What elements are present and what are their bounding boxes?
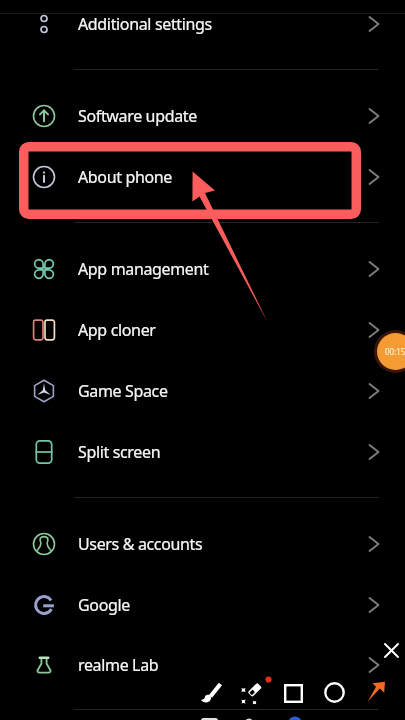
staticText: Additional settings [78,13,212,35]
button[interactable]: Google [0,575,405,635]
staticText: Software update [78,105,197,127]
button[interactable]: App management [0,239,405,299]
button[interactable]: realme Lab [0,635,405,695]
staticText: Google [78,594,130,616]
button[interactable]: Game Space [0,361,405,421]
staticText: About phone [78,166,173,188]
button[interactable]: Additional settings [0,0,405,54]
button[interactable]: App cloner [0,300,405,360]
staticText: App cloner [78,319,156,341]
button[interactable]: Arrow [366,680,388,702]
button[interactable]: Rectangle [284,684,303,703]
staticText: 00:15 [385,346,405,357]
staticText: Split screen [78,441,161,463]
button[interactable]: Software update [0,86,405,146]
button[interactable]: About phone [0,147,405,207]
button[interactable]: Ellipse [324,682,345,703]
button[interactable]: Screen recorder timer [377,333,405,370]
staticText: App management [78,258,209,280]
staticText: realme Lab [78,654,159,676]
staticText: Users & accounts [78,533,203,555]
button[interactable]: Brush [199,678,224,703]
button[interactable]: Close [383,642,400,659]
button[interactable]: Highlighter [238,674,272,708]
button[interactable]: Split screen [0,422,405,482]
button[interactable]: Users & accounts [0,514,405,574]
staticText: Game Space [78,380,168,402]
